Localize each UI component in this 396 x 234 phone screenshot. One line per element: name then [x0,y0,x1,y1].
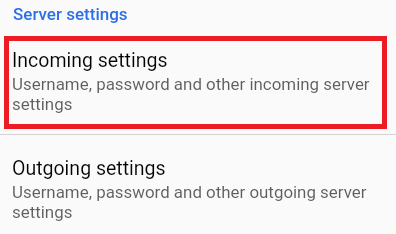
button[interactable]: Server settings [0,0,396,34]
staticText: Outgoing settings [12,157,166,180]
staticText: Incoming settings [12,49,168,72]
button[interactable]: Outgoing settings [0,135,396,234]
button[interactable]: Incoming settings [0,35,396,134]
staticText: Username, password and other incoming se… [12,74,392,114]
staticText: Username, password and other outgoing se… [12,182,392,222]
staticText: Server settings [13,4,128,24]
